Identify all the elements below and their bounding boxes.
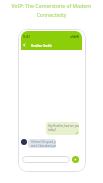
button[interactable]: Send [72,156,79,163]
staticText: Hey Heather, how are you doing today? [48,124,79,132]
button[interactable] [22,156,70,163]
staticText: VoIP: The Cornerstone of Modern Connecti… [0,3,103,18]
staticText: 9:41 [23,34,31,39]
button[interactable]: Hey Heather, how are you doing today? [46,122,79,135]
button[interactable]: Back [21,41,27,48]
button[interactable]: Heather Smith avatar [21,139,27,145]
button[interactable]: Hi there! I'm good, just easy with work.… [28,139,56,148]
button[interactable]: Heather Smith [31,44,52,48]
staticText: Hi there! I'm good, just easy with work.… [31,140,56,148]
